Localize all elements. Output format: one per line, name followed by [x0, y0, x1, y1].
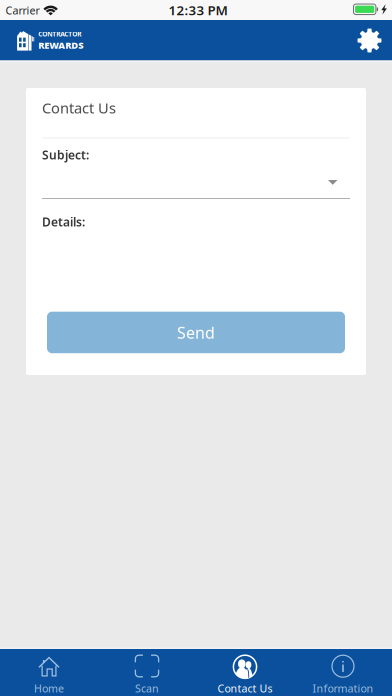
staticText: Subject: [42, 147, 89, 163]
button[interactable]: Home [0, 649, 98, 696]
staticText: Contact Us [217, 681, 272, 695]
staticText: CONTRACTOR [38, 30, 81, 38]
button[interactable]: Send [47, 312, 345, 353]
staticText: REWARDS [38, 39, 83, 51]
staticText: Details: [42, 214, 85, 230]
button[interactable]: Information [294, 649, 392, 696]
staticText: Contact Us [42, 98, 116, 117]
staticText: 12:33 PM [168, 1, 227, 19]
staticText: Scan [135, 681, 159, 695]
button[interactable]: Settings [349, 20, 389, 60]
button[interactable]: Scan [98, 649, 196, 696]
staticText: Home [34, 681, 64, 695]
staticText: Carrier [5, 3, 39, 17]
button[interactable]: Contact Us [196, 649, 294, 696]
staticText: Send [177, 322, 215, 343]
staticText: Information [312, 681, 373, 695]
